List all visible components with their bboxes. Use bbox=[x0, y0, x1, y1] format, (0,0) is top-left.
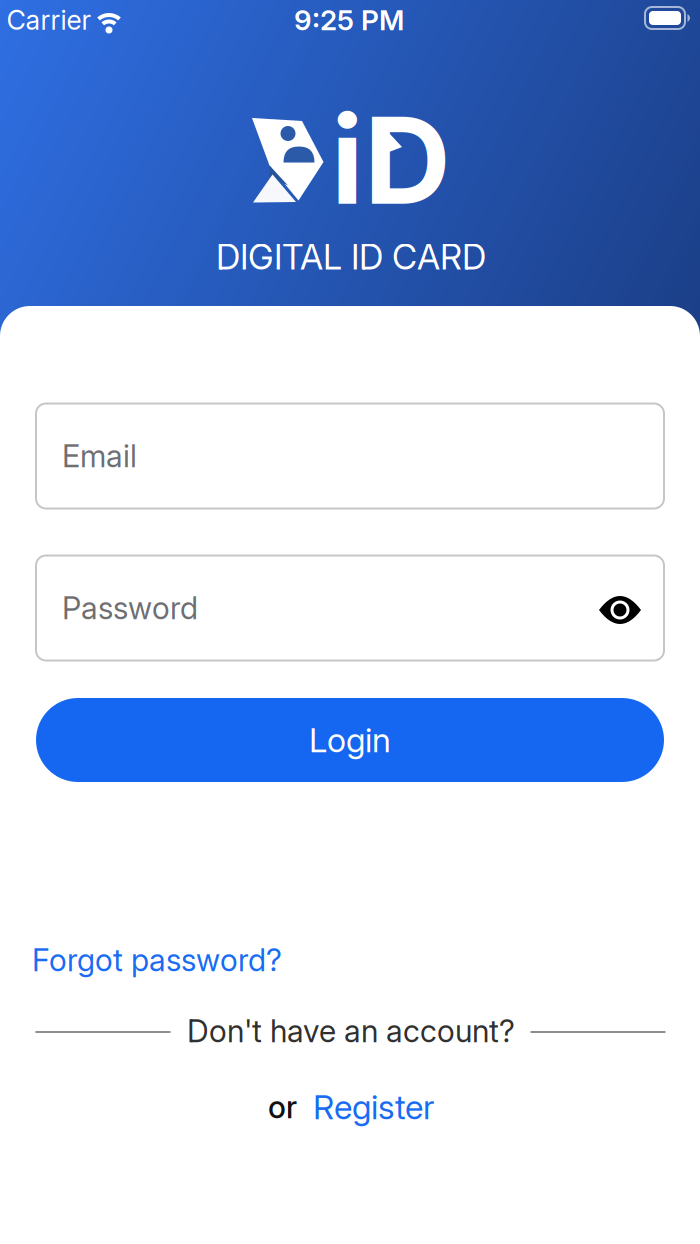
staticText: Carrier bbox=[6, 4, 91, 36]
staticText: 9:25 PM bbox=[294, 3, 404, 36]
staticText: DIGITAL ID CARD bbox=[216, 237, 486, 277]
staticText: iD bbox=[331, 89, 451, 231]
button[interactable]: Password bbox=[36, 555, 664, 660]
staticText: Email bbox=[62, 438, 137, 474]
button[interactable]: Register bbox=[313, 1087, 434, 1127]
staticText: Register bbox=[313, 1087, 434, 1127]
staticText: Don't have an account? bbox=[187, 1013, 515, 1049]
staticText: Password bbox=[62, 590, 198, 626]
staticText: Login bbox=[309, 720, 391, 760]
staticText: Forgot password? bbox=[32, 942, 282, 978]
staticText: or bbox=[268, 1089, 297, 1125]
button[interactable]: Forgot password? bbox=[32, 942, 282, 978]
button[interactable]: Login bbox=[36, 698, 664, 782]
button[interactable]: Show password bbox=[592, 588, 648, 632]
button[interactable]: Email bbox=[36, 403, 664, 508]
